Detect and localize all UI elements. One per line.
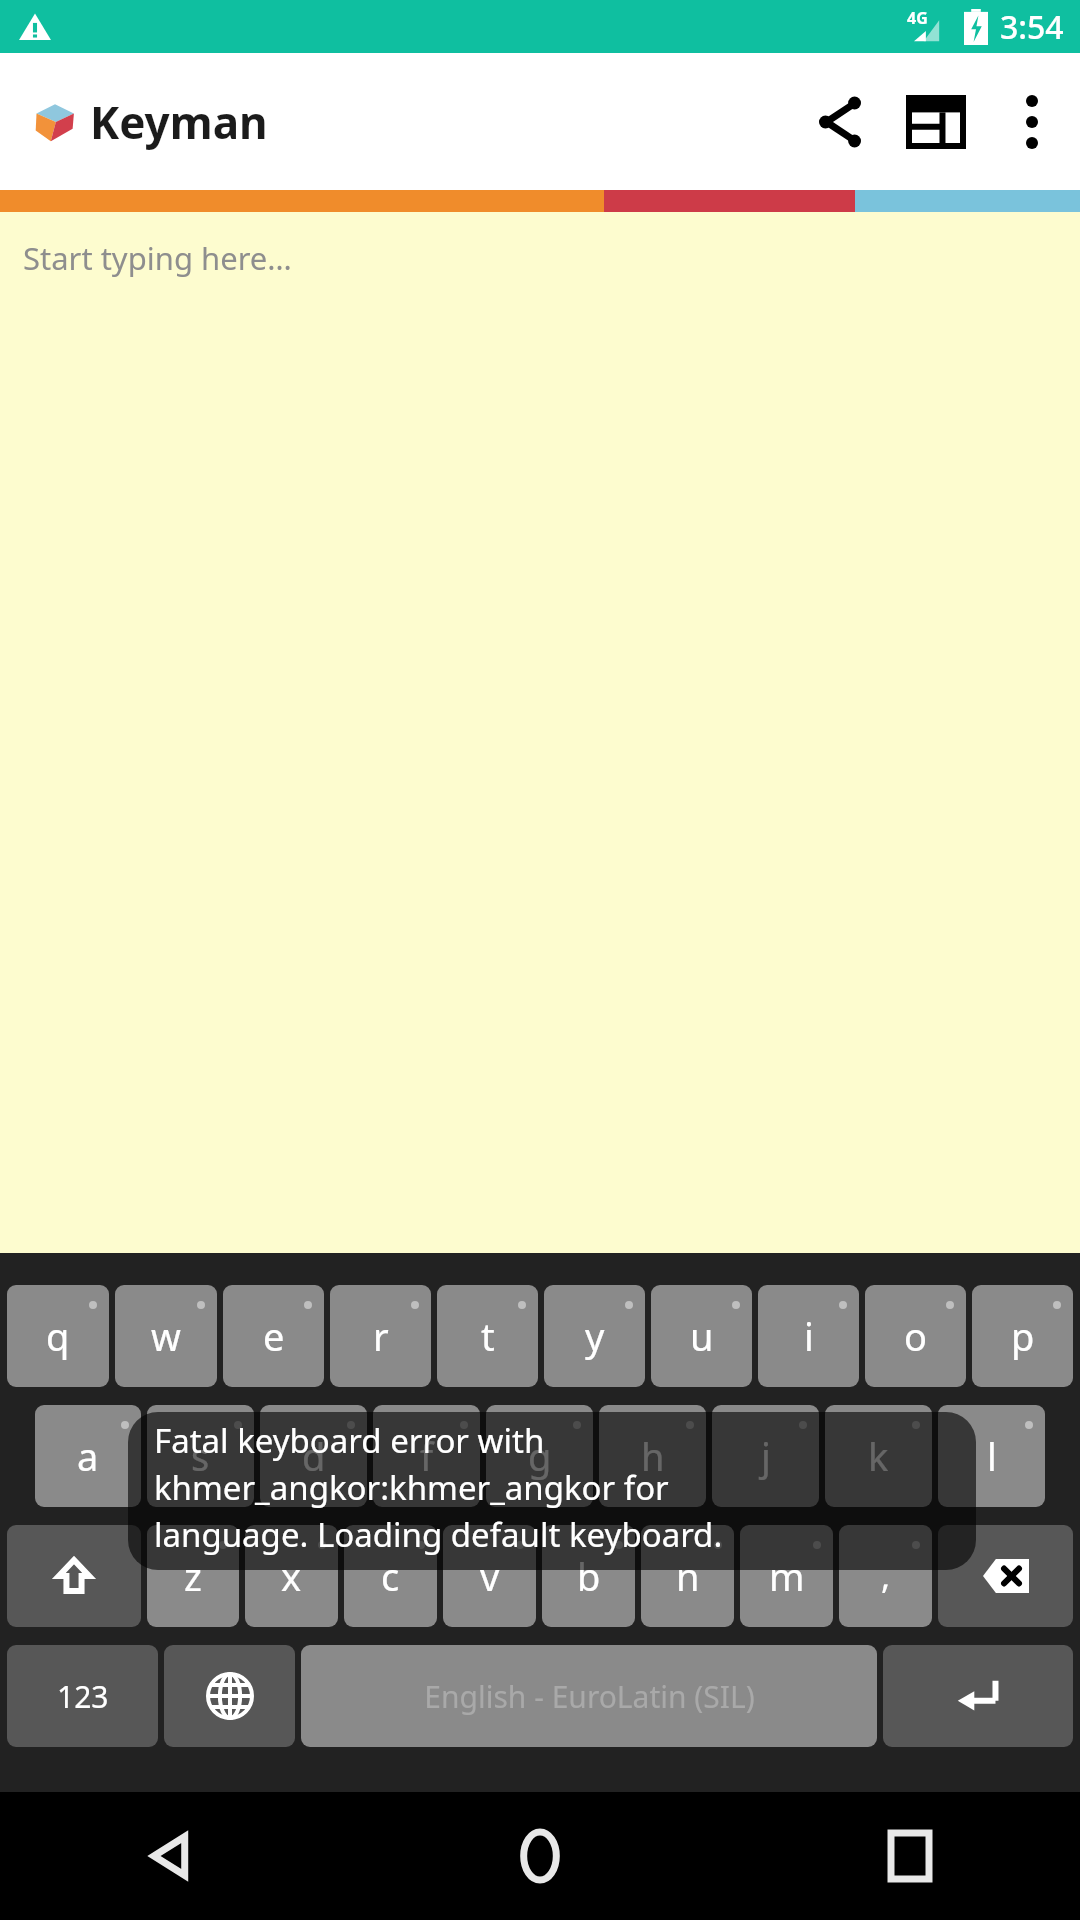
button[interactable]: English - EuroLatin (SIL) bbox=[301, 1645, 877, 1747]
staticText: n bbox=[676, 1550, 700, 1602]
button[interactable]: Layout bbox=[888, 74, 984, 170]
button[interactable]: y bbox=[544, 1285, 645, 1387]
staticText: d bbox=[302, 1430, 326, 1482]
staticText: c bbox=[381, 1550, 400, 1602]
button[interactable]: Change keyboard bbox=[164, 1645, 295, 1747]
button[interactable]: Backspace bbox=[938, 1525, 1073, 1627]
button[interactable]: p bbox=[972, 1285, 1073, 1387]
staticText: e bbox=[263, 1310, 285, 1362]
staticText: Fatal keyboard error with khmer_angkor:k… bbox=[154, 1418, 723, 1557]
button[interactable]: a bbox=[35, 1405, 141, 1507]
button[interactable]: z bbox=[147, 1525, 239, 1627]
button[interactable]: r bbox=[330, 1285, 431, 1387]
staticText: y bbox=[585, 1310, 605, 1362]
staticText: 123 bbox=[57, 1676, 109, 1717]
button[interactable]: Back bbox=[130, 1816, 210, 1896]
button[interactable]: Shift bbox=[7, 1525, 141, 1627]
button[interactable]: More options bbox=[984, 74, 1080, 170]
staticText: z bbox=[184, 1550, 202, 1602]
staticText: g bbox=[528, 1430, 552, 1482]
staticText: f bbox=[420, 1430, 434, 1482]
staticText: Start typing here… bbox=[23, 237, 292, 279]
staticText: Keyman bbox=[90, 92, 268, 152]
button[interactable]: t bbox=[437, 1285, 538, 1387]
staticText: v bbox=[480, 1550, 500, 1602]
button[interactable]: h bbox=[599, 1405, 706, 1507]
button[interactable]: m bbox=[740, 1525, 833, 1627]
button[interactable]: l bbox=[938, 1405, 1045, 1507]
button[interactable]: q bbox=[7, 1285, 109, 1387]
staticText: o bbox=[904, 1310, 927, 1362]
button[interactable]: f bbox=[373, 1405, 480, 1507]
staticText: 3:54 bbox=[1000, 5, 1064, 49]
button[interactable]: o bbox=[865, 1285, 966, 1387]
staticText: , bbox=[881, 1553, 891, 1599]
staticText: s bbox=[191, 1430, 210, 1482]
staticText: l bbox=[987, 1430, 997, 1482]
button[interactable]: i bbox=[758, 1285, 859, 1387]
button[interactable]: x bbox=[245, 1525, 338, 1627]
button[interactable]: Home bbox=[500, 1816, 580, 1896]
button[interactable]: n bbox=[641, 1525, 734, 1627]
button[interactable]: d bbox=[260, 1405, 367, 1507]
button[interactable]: e bbox=[223, 1285, 324, 1387]
button[interactable]: Enter bbox=[883, 1645, 1073, 1747]
staticText: 4G bbox=[907, 7, 928, 29]
staticText: p bbox=[1011, 1310, 1035, 1362]
staticText: b bbox=[577, 1550, 601, 1602]
staticText: t bbox=[481, 1310, 495, 1362]
button[interactable]: j bbox=[712, 1405, 819, 1507]
staticText: h bbox=[641, 1430, 665, 1482]
staticText: a bbox=[77, 1430, 99, 1482]
button[interactable]: g bbox=[486, 1405, 593, 1507]
button[interactable]: k bbox=[825, 1405, 932, 1507]
button[interactable]: v bbox=[443, 1525, 536, 1627]
button[interactable]: b bbox=[542, 1525, 635, 1627]
staticText: k bbox=[868, 1430, 889, 1482]
button[interactable]: s bbox=[147, 1405, 254, 1507]
button[interactable]: u bbox=[651, 1285, 752, 1387]
staticText: x bbox=[281, 1550, 302, 1602]
button[interactable]: Recent apps bbox=[870, 1816, 950, 1896]
button[interactable]: c bbox=[344, 1525, 437, 1627]
button[interactable]: 123 bbox=[7, 1645, 158, 1747]
staticText: u bbox=[690, 1310, 714, 1362]
staticText: j bbox=[761, 1430, 771, 1482]
staticText: w bbox=[151, 1310, 181, 1362]
staticText: English - EuroLatin (SIL) bbox=[424, 1676, 755, 1717]
button[interactable]: , bbox=[839, 1525, 932, 1627]
staticText: r bbox=[373, 1310, 389, 1362]
button[interactable]: Share bbox=[792, 74, 888, 170]
button[interactable]: w bbox=[115, 1285, 217, 1387]
staticText: m bbox=[769, 1550, 805, 1602]
staticText: i bbox=[804, 1310, 814, 1362]
staticText: q bbox=[46, 1310, 70, 1362]
button[interactable]: Start typing here… bbox=[0, 212, 1080, 1253]
